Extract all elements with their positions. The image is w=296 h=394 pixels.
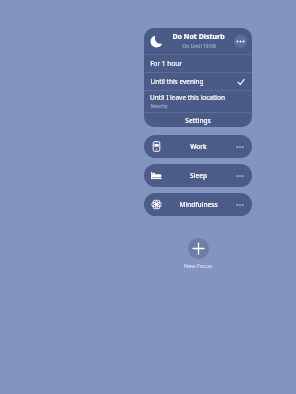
button[interactable]: Until this evening bbox=[144, 73, 252, 90]
staticText: On Until 19:08 bbox=[182, 43, 216, 50]
button[interactable]: Settings bbox=[144, 113, 252, 127]
staticText: Work bbox=[190, 142, 207, 151]
button[interactable]: Work options bbox=[235, 142, 245, 152]
staticText: New Focus bbox=[184, 262, 212, 269]
button[interactable]: Mindfulness bbox=[144, 193, 252, 216]
button[interactable]: Mindfulness options bbox=[235, 200, 245, 210]
button[interactable]: Do Not Disturb bbox=[144, 28, 252, 54]
staticText: Until I leave this location bbox=[150, 93, 225, 102]
button[interactable]: Sleep options bbox=[235, 171, 245, 181]
staticText: Do Not Disturb bbox=[172, 32, 225, 42]
staticText: Nearby bbox=[150, 103, 168, 110]
button[interactable]: New Focus bbox=[188, 238, 209, 259]
button[interactable]: Sleep bbox=[144, 164, 252, 187]
staticText: Until this evening bbox=[150, 77, 204, 86]
staticText: Mindfulness bbox=[179, 200, 218, 209]
button[interactable]: Until I leave this location bbox=[144, 91, 252, 112]
button[interactable]: Work bbox=[144, 135, 252, 158]
staticText: Sleep bbox=[190, 171, 207, 180]
button[interactable]: For 1 hour bbox=[144, 55, 252, 72]
button[interactable]: More options bbox=[234, 35, 247, 48]
staticText: For 1 hour bbox=[150, 59, 182, 68]
other: Do Not Disturb bbox=[150, 35, 163, 48]
staticText: Settings bbox=[185, 116, 211, 125]
